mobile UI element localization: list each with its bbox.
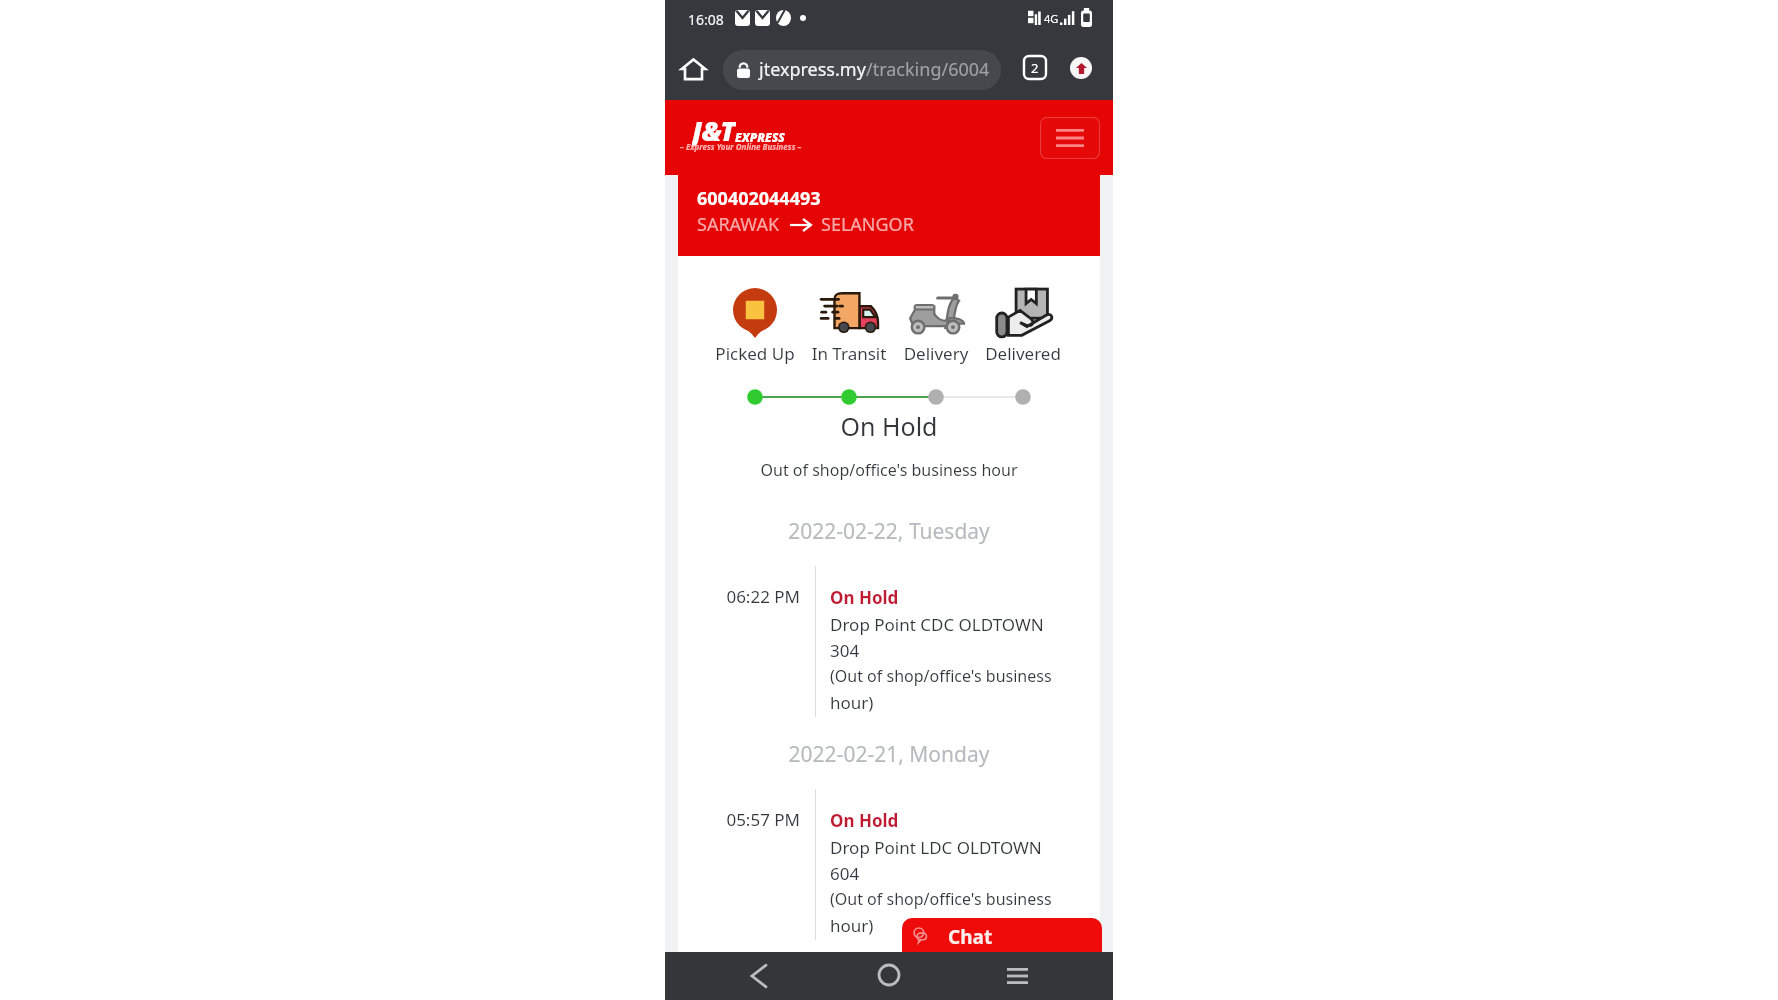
staticText: hour): [830, 691, 874, 714]
staticText: Out of shop/office's business hour: [665, 459, 1113, 481]
staticText: hour): [830, 914, 874, 937]
staticText: Delivered: [963, 342, 1083, 365]
staticText: Chat: [948, 924, 993, 950]
button[interactable]: Recent apps: [1007, 968, 1028, 984]
staticText: SARAWAK: [697, 212, 780, 237]
button[interactable]: Home: [875, 961, 903, 989]
staticText: 06:22 PM: [685, 585, 800, 608]
button[interactable]: Delivery: [906, 286, 966, 340]
staticText: Drop Point LDC OLDTOWN: [830, 836, 1042, 859]
button[interactable]: Tabs: [1024, 56, 1046, 79]
staticText: On Hold: [830, 809, 899, 832]
button[interactable]: Back: [746, 960, 772, 992]
staticText: 05:57 PM: [685, 808, 800, 831]
staticText: SELANGOR: [821, 212, 914, 237]
button[interactable]: jtexpress.my: [723, 50, 1001, 90]
staticText: On Hold: [665, 409, 1113, 443]
staticText: 2: [1031, 59, 1039, 77]
button[interactable]: Chat: [902, 918, 1102, 952]
button[interactable]: More options: [1070, 57, 1092, 79]
staticText: Picked Up: [695, 342, 815, 365]
staticText: (Out of shop/office's business: [830, 888, 1052, 910]
staticText: 600402044493: [697, 186, 821, 211]
staticText: (Out of shop/office's business: [830, 665, 1052, 687]
staticText: 604: [830, 862, 860, 885]
staticText: 2022-02-22, Tuesday: [665, 517, 1113, 546]
staticText: Drop Point CDC OLDTOWN: [830, 613, 1044, 636]
staticText: EXPRESS: [735, 129, 785, 145]
staticText: jtexpress.my: [759, 57, 866, 82]
button[interactable]: In Transit: [819, 286, 879, 340]
staticText: 2022-02-21, Monday: [665, 740, 1113, 769]
button[interactable]: Delivered: [993, 286, 1053, 340]
staticText: On Hold: [830, 586, 899, 609]
staticText: In Transit: [789, 342, 909, 365]
staticText: /tracking/6004: [866, 57, 990, 82]
button[interactable]: Home: [681, 57, 706, 81]
button[interactable]: Menu: [1040, 117, 1100, 159]
staticText: – Express Your Online Business –: [680, 141, 802, 152]
staticText: 4G: [1044, 11, 1059, 26]
staticText: J&T: [692, 112, 736, 148]
button[interactable]: Picked Up: [725, 286, 785, 340]
staticText: 16:08: [688, 10, 724, 29]
other: Chat: [912, 927, 928, 943]
staticText: Delivery: [876, 342, 996, 365]
staticText: 304: [830, 639, 860, 662]
